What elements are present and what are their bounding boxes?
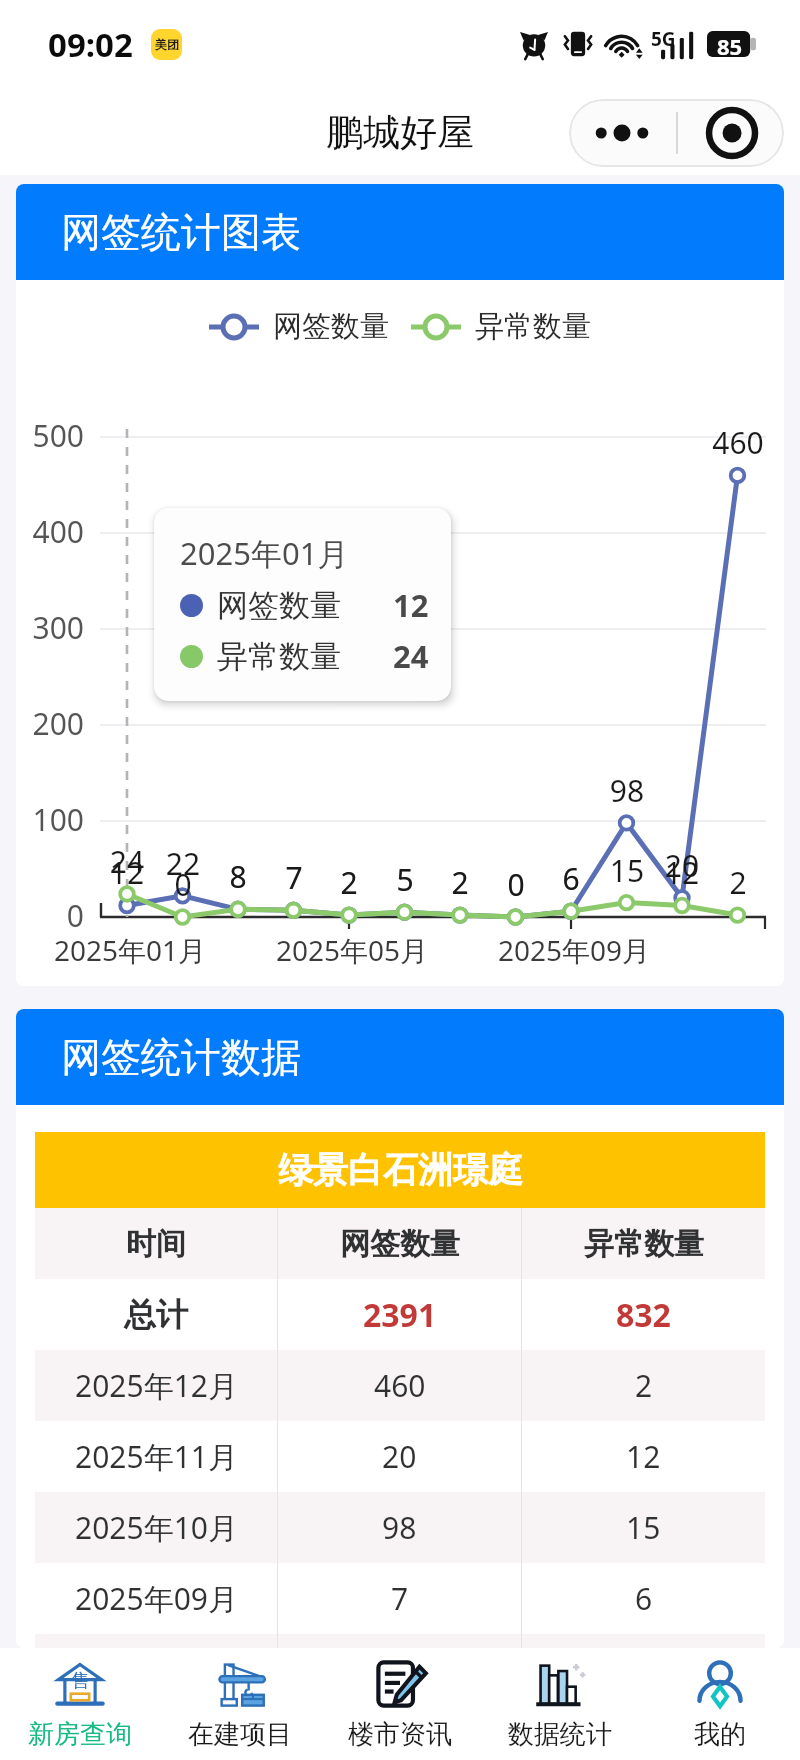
- staticText: 12: [393, 584, 429, 626]
- staticText: 绿景白石洲璟庭: [278, 1148, 523, 1192]
- staticText: 85: [717, 31, 743, 57]
- staticText: 300: [16, 607, 84, 648]
- staticText: 832: [616, 1293, 671, 1337]
- staticText: 6: [536, 858, 606, 899]
- staticText: 12: [647, 852, 717, 893]
- staticText: 20: [382, 1436, 417, 1477]
- button[interactable]: More options: [569, 99, 784, 167]
- staticText: 网签统计图表: [61, 207, 301, 257]
- staticText: 我的: [694, 1718, 746, 1751]
- staticText: 总计: [124, 1295, 188, 1335]
- staticText: 异常数量: [475, 308, 591, 345]
- staticText: 100: [16, 799, 84, 840]
- button[interactable]: 2025年12月: [35, 1350, 765, 1421]
- staticText: 楼市资讯: [348, 1718, 452, 1751]
- staticText: 美团: [155, 37, 179, 52]
- staticText: 0: [481, 864, 551, 905]
- staticText: 2: [425, 862, 495, 903]
- staticText: 5: [370, 859, 440, 900]
- staticText: 2: [314, 862, 384, 903]
- staticText: 网签数量: [217, 586, 341, 625]
- button[interactable]: 时间: [35, 1208, 765, 1279]
- button[interactable]: 2025年10月: [35, 1492, 765, 1563]
- staticText: 7: [259, 857, 329, 898]
- staticText: 售: [71, 1669, 90, 1693]
- button[interactable]: 我的: [640, 1648, 800, 1760]
- staticText: 500: [16, 415, 84, 456]
- staticText: 2025年09月: [464, 931, 684, 969]
- staticText: 2: [425, 862, 495, 903]
- button[interactable]: 网签数量: [209, 308, 389, 345]
- staticText: 7: [391, 1578, 409, 1619]
- staticText: 8: [203, 856, 273, 897]
- staticText: 0: [148, 864, 218, 905]
- button[interactable]: 数据统计: [480, 1648, 640, 1760]
- staticText: 0: [481, 864, 551, 905]
- staticText: 网签数量: [340, 1225, 460, 1263]
- staticText: 7: [259, 857, 329, 898]
- staticText: 15: [626, 1507, 661, 1548]
- staticText: 数据统计: [508, 1718, 612, 1751]
- staticText: 时间: [126, 1225, 186, 1263]
- staticText: 2025年11月: [75, 1436, 238, 1477]
- button[interactable]: 在建项目: [160, 1648, 320, 1760]
- staticText: 98: [382, 1507, 417, 1548]
- staticText: 0: [16, 895, 84, 936]
- staticText: 8: [203, 856, 273, 897]
- staticText: 09:02: [48, 22, 133, 67]
- staticText: 5G: [651, 26, 676, 52]
- staticText: 12: [626, 1436, 661, 1477]
- button[interactable]: 异常数量: [411, 308, 591, 345]
- staticText: 5: [370, 859, 440, 900]
- staticText: 2025年01月: [180, 532, 349, 574]
- staticText: 6: [635, 1578, 653, 1619]
- button[interactable]: 售: [0, 1648, 160, 1760]
- staticText: 新房查询: [28, 1718, 132, 1751]
- staticText: 24: [92, 841, 162, 882]
- staticText: 2025年09月: [75, 1578, 238, 1619]
- button[interactable]: 楼市资讯: [320, 1648, 480, 1760]
- staticText: 异常数量: [584, 1225, 704, 1263]
- staticText: 12: [92, 852, 162, 893]
- staticText: 460: [374, 1365, 426, 1406]
- staticText: 20: [647, 845, 717, 886]
- staticText: 2025年10月: [75, 1507, 238, 1548]
- button[interactable]: 2025年09月: [35, 1563, 765, 1634]
- staticText: 在建项目: [188, 1718, 292, 1751]
- staticText: 24: [393, 635, 429, 677]
- staticText: 200: [16, 703, 84, 744]
- staticText: 2391: [363, 1293, 437, 1337]
- staticText: 2: [314, 862, 384, 903]
- staticText: 鹏城好屋: [326, 109, 474, 156]
- staticText: 异常数量: [217, 637, 341, 676]
- staticText: 6: [536, 858, 606, 899]
- staticText: 400: [16, 511, 84, 552]
- staticText: 2025年05月: [242, 931, 462, 969]
- staticText: 22: [148, 843, 218, 884]
- staticText: 460: [703, 422, 773, 463]
- staticText: 2: [635, 1365, 653, 1406]
- staticText: 2: [703, 862, 773, 903]
- button[interactable]: 2025年11月: [35, 1421, 765, 1492]
- staticText: 15: [592, 850, 662, 891]
- staticText: 网签统计数据: [61, 1032, 301, 1082]
- staticText: 2025年12月: [75, 1365, 238, 1406]
- button[interactable]: 总计: [35, 1279, 765, 1350]
- staticText: 98: [592, 770, 662, 811]
- staticText: 2025年01月: [20, 931, 240, 969]
- staticText: 网签数量: [273, 308, 389, 345]
